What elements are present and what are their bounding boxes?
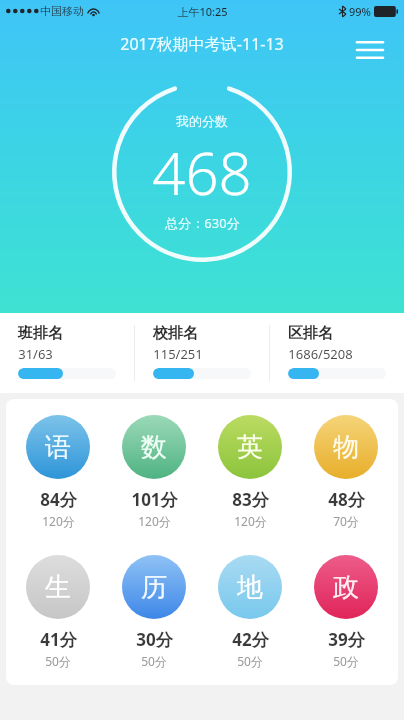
staticText: 99%: [349, 4, 371, 19]
staticText: 区排名: [288, 324, 333, 343]
staticText: 101分: [131, 488, 178, 511]
staticText: 39分: [328, 628, 365, 651]
button[interactable]: Menu: [348, 28, 392, 72]
staticText: 70分: [333, 513, 359, 529]
staticText: 120分: [234, 513, 267, 529]
staticText: 31/63: [18, 345, 53, 363]
staticText: 上午10:25: [177, 4, 228, 19]
staticText: 50分: [141, 653, 167, 669]
button[interactable]: 生: [14, 553, 102, 671]
button[interactable]: 数: [110, 413, 198, 531]
staticText: 120分: [138, 513, 171, 529]
staticText: 语: [45, 431, 71, 464]
button[interactable]: 班排名: [0, 313, 134, 393]
staticText: 总分：630分: [165, 214, 240, 232]
button[interactable]: 历: [110, 553, 198, 671]
staticText: 120分: [42, 513, 75, 529]
staticText: 物: [333, 431, 359, 464]
button[interactable]: 地: [206, 553, 294, 671]
staticText: 1686/5208: [288, 345, 353, 363]
staticText: 115/251: [153, 345, 203, 363]
button[interactable]: 语: [14, 413, 102, 531]
staticText: 数: [141, 431, 167, 464]
staticText: 48分: [328, 488, 365, 511]
staticText: 30分: [136, 628, 173, 651]
staticText: 班排名: [18, 324, 63, 343]
staticText: 英: [237, 431, 263, 464]
staticText: 468: [152, 133, 252, 212]
button[interactable]: 物: [302, 413, 390, 531]
staticText: 校排名: [153, 324, 198, 343]
staticText: 41分: [40, 628, 77, 651]
staticText: 50分: [333, 653, 359, 669]
button[interactable]: 政: [302, 553, 390, 671]
button[interactable]: 校排名: [135, 313, 269, 393]
staticText: 中国移动: [40, 4, 84, 18]
staticText: 生: [45, 571, 71, 604]
staticText: 我的分数: [176, 113, 228, 129]
button[interactable]: 英: [206, 413, 294, 531]
staticText: 历: [141, 571, 167, 604]
staticText: 政: [333, 571, 359, 604]
staticText: 83分: [232, 488, 269, 511]
staticText: 2017秋期中考试-11-13: [120, 33, 284, 55]
staticText: 地: [237, 571, 263, 604]
staticText: 50分: [45, 653, 71, 669]
button[interactable]: 区排名: [270, 313, 404, 393]
staticText: 50分: [237, 653, 263, 669]
staticText: 42分: [232, 628, 269, 651]
staticText: 84分: [40, 488, 77, 511]
